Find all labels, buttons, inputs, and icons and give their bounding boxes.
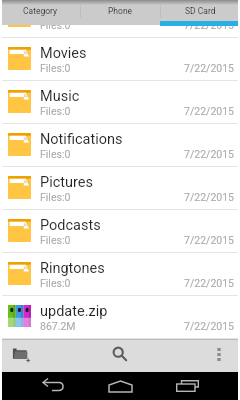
button[interactable]: Back: [20, 372, 87, 400]
staticText: Files:0: [40, 191, 71, 203]
button[interactable]: Pictures: [0, 167, 240, 210]
button[interactable]: Category: [0, 0, 80, 21]
button[interactable]: SD Card: [160, 0, 240, 21]
staticText: Download: [40, 2, 105, 19]
staticText: 867.2M: [40, 320, 76, 332]
button[interactable]: Movies: [0, 38, 240, 81]
staticText: Category: [23, 6, 58, 16]
button[interactable]: More options: [198, 339, 240, 372]
staticText: Phone: [108, 6, 133, 16]
staticText: Files:0: [40, 19, 71, 31]
staticText: Pictures: [40, 174, 93, 191]
staticText: 7/22/2015: [184, 320, 234, 332]
button[interactable]: Notifications: [0, 124, 240, 167]
staticText: 7/22/2015: [184, 148, 234, 160]
button[interactable]: Search: [42, 339, 198, 372]
staticText: Podcasts: [40, 217, 101, 234]
button[interactable]: Phone: [80, 0, 160, 21]
staticText: 7/22/2015: [184, 191, 234, 203]
staticText: Music: [40, 88, 80, 105]
staticText: Files:0: [40, 234, 71, 246]
staticText: Files:0: [40, 105, 71, 117]
button[interactable]: Ringtones: [0, 253, 240, 296]
button[interactable]: New folder: [0, 339, 42, 372]
button[interactable]: Download: [0, 0, 240, 38]
staticText: 7/22/2015: [184, 62, 234, 74]
staticText: update.zip: [40, 303, 108, 320]
staticText: Movies: [40, 45, 87, 62]
button[interactable]: Home: [87, 372, 154, 400]
staticText: 7/22/2015: [184, 105, 234, 117]
staticText: Notifications: [40, 131, 123, 148]
staticText: SD Card: [185, 6, 216, 16]
button[interactable]: update.zip: [0, 296, 240, 339]
staticText: Files:0: [40, 277, 71, 289]
button[interactable]: Music: [0, 81, 240, 124]
staticText: 7/22/2015: [184, 19, 234, 31]
staticText: Ringtones: [40, 260, 105, 277]
staticText: 7/22/2015: [184, 234, 234, 246]
staticText: Files:0: [40, 62, 71, 74]
button[interactable]: Recent apps: [154, 372, 221, 400]
staticText: 7/22/2015: [184, 277, 234, 289]
button[interactable]: Podcasts: [0, 210, 240, 253]
staticText: Files:0: [40, 148, 71, 160]
